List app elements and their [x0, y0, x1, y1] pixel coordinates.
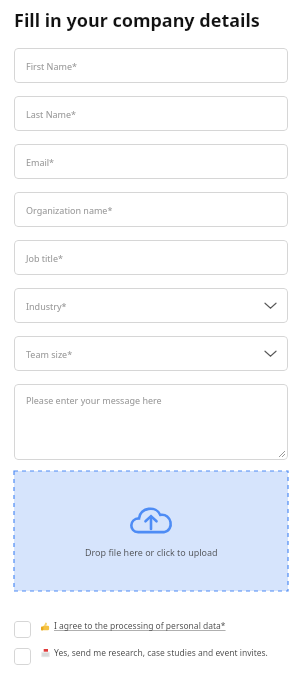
button[interactable]: Checkbox — [14, 645, 288, 666]
other: Checkbox — [14, 621, 31, 638]
other: Checkbox — [14, 648, 31, 665]
staticText: Please enter your message here — [26, 394, 162, 406]
button[interactable]: Industry* — [14, 288, 288, 323]
staticText: I agree to the processing of personal da… — [54, 620, 226, 632]
staticText: Last Name* — [26, 108, 77, 120]
staticText: Drop file here or click to upload — [85, 546, 218, 558]
button[interactable]: Please enter your message here — [14, 384, 288, 460]
button[interactable]: Checkbox — [14, 618, 288, 639]
button[interactable]: First Name* — [14, 48, 288, 83]
button[interactable]: Organization name* — [14, 192, 288, 227]
staticText: Fill in your company details — [14, 8, 260, 33]
button[interactable]: Email* — [14, 144, 288, 179]
button[interactable]: Job title* — [14, 240, 288, 275]
staticText: Job title* — [26, 252, 63, 264]
staticText: Industry* — [26, 300, 67, 312]
staticText: Email* — [26, 156, 55, 168]
staticText: First Name* — [26, 60, 77, 72]
button[interactable]: Drop file here or click to upload — [14, 471, 288, 591]
button[interactable]: Last Name* — [14, 96, 288, 131]
button[interactable]: Team size* — [14, 336, 288, 371]
staticText: Yes, send me research, case studies and … — [54, 647, 268, 659]
staticText: Team size* — [26, 348, 73, 360]
staticText: Organization name* — [26, 204, 113, 216]
